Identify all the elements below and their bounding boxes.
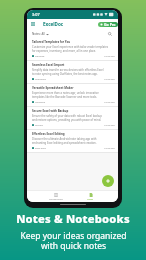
button[interactable]: Search	[106, 30, 114, 38]
button[interactable]: Menu	[29, 20, 37, 28]
staticText: Seamless Excel Import	[32, 63, 65, 67]
staticText: 10:28 pm	[104, 123, 115, 126]
staticText: Notes & Notebooks	[16, 211, 130, 226]
staticText: Ensure the safety of your data with robu…	[32, 114, 102, 118]
button[interactable]: Notes	[73, 192, 108, 202]
button[interactable]: Seamless Excel Import	[27, 61, 118, 84]
staticText: and restore options, providing you with …	[32, 118, 102, 122]
staticText: to note syncing using OurNotes, the best…	[32, 72, 98, 76]
staticText: Secure	[35, 123, 43, 126]
staticText: ExcelDoc	[43, 21, 64, 27]
button[interactable]: Versatile Spreadsheet Maker	[27, 84, 118, 107]
button[interactable]: Effortless Excel Editing	[27, 130, 118, 153]
staticText: Notes: All	[32, 32, 45, 36]
staticText: Notes	[87, 198, 94, 201]
staticText: Go Pro	[104, 22, 116, 27]
staticText: Secure Excel with Backup	[32, 109, 69, 113]
staticText: Seamless	[35, 77, 46, 80]
button[interactable]: New note	[102, 175, 114, 187]
staticText: Simplify data transfer across devices wi…	[32, 68, 104, 72]
staticText: Customize your Excel experience with tai…	[32, 45, 109, 49]
staticText: 10:28 pm	[104, 77, 115, 80]
staticText: 10:28 pm	[104, 54, 115, 57]
staticText: Keep your ideas organized with quick not…	[20, 230, 127, 252]
button[interactable]: Notes: All	[32, 31, 49, 37]
staticText: Experience more than a notes app; unlock…	[32, 91, 99, 95]
staticText: Effortless	[35, 146, 47, 149]
button[interactable]: Tailored Templates for You	[27, 38, 118, 61]
staticText: 10:28 pm	[104, 100, 115, 103]
staticText: Tailored Templates for You	[32, 40, 71, 44]
button[interactable]: Go Pro	[98, 22, 118, 27]
staticText: 10:28 pm	[104, 146, 115, 149]
staticText: Effortless Excel Editing	[32, 132, 65, 136]
staticText: for expenses, inventory, and more, all i…	[32, 49, 97, 53]
button[interactable]: Spreadsheets	[39, 192, 73, 202]
button[interactable]: Secure Excel with Backup	[27, 107, 118, 130]
staticText: enchanting Excel editing and spreadsheet…	[32, 141, 97, 145]
staticText: Tailored	[35, 54, 45, 57]
staticText: Versatile Spreadsheet Maker	[32, 86, 74, 90]
staticText: Versatile	[35, 100, 46, 103]
staticText: 3:07	[32, 12, 40, 17]
staticText: Spreadsheets	[49, 198, 63, 201]
staticText: templates like the Barcode Scanner and m…	[32, 95, 98, 99]
staticText: Discover the ultimate Android note takin…	[32, 137, 97, 141]
